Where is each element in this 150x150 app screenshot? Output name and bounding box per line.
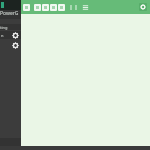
button[interactable]: Settings — [139, 3, 147, 11]
button[interactable]: Undo — [69, 4, 73, 11]
button[interactable]: ting — [0, 24, 21, 30]
staticText: PowerGa — [0, 10, 21, 19]
button[interactable]: Cut — [50, 4, 57, 11]
staticText: n — [1, 33, 4, 38]
staticText: ting — [0, 25, 8, 30]
button[interactable]: PowerGa — [0, 10, 21, 19]
button[interactable]: Settings — [0, 31, 21, 39]
button[interactable]: Save — [42, 4, 49, 11]
button[interactable]: List view — [82, 4, 89, 11]
button[interactable]: Open — [34, 4, 41, 11]
button[interactable]: New — [23, 4, 30, 11]
button[interactable]: Copy — [58, 4, 65, 11]
button[interactable]: Configure — [0, 41, 21, 49]
button[interactable]: Redo — [74, 4, 78, 11]
